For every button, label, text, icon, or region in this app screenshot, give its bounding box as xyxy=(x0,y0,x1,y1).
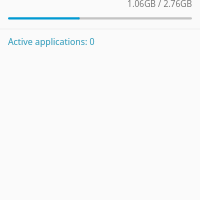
staticText: 1.06GB / 2.76GB xyxy=(0,0,192,10)
button[interactable]: Active applications: 0 xyxy=(8,36,95,48)
button[interactable]: Memory usage 38 percent xyxy=(0,12,200,25)
